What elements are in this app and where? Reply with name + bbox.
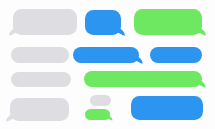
button[interactable]: Message thread (0, 0, 215, 129)
